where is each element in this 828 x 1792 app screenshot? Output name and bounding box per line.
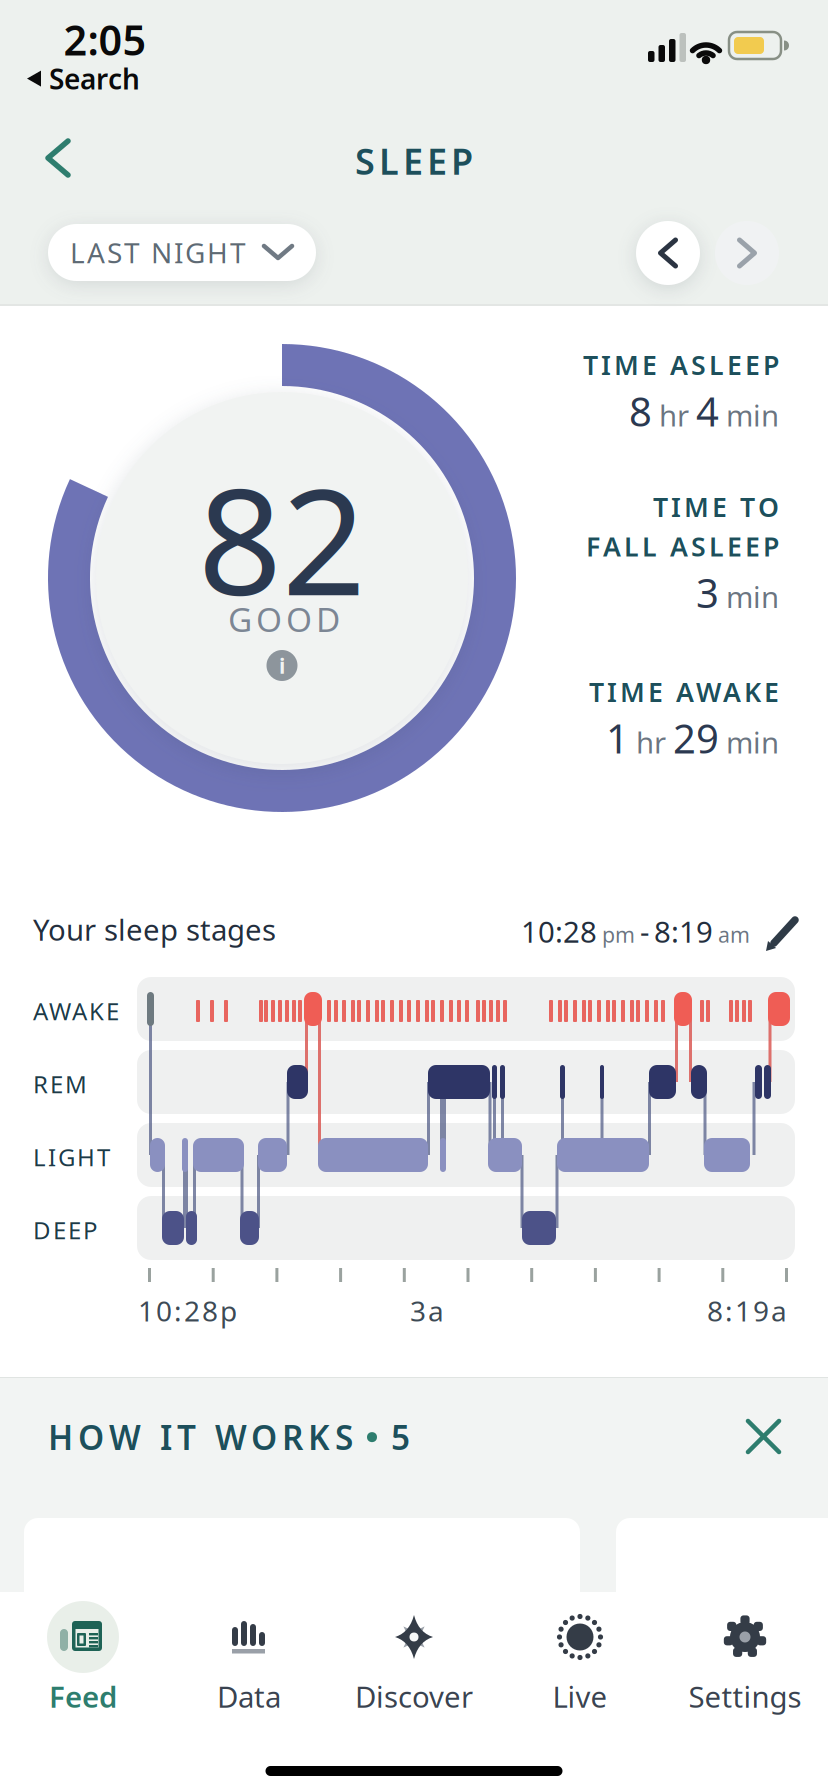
staticText: Feed — [49, 1677, 117, 1716]
staticText: LIGHT — [33, 1141, 110, 1173]
button[interactable] — [24, 1518, 580, 1618]
staticText: Search — [49, 60, 140, 97]
staticText: 3 — [696, 566, 719, 619]
staticText: LAST NIGHT — [70, 234, 246, 271]
staticText: am — [718, 920, 750, 949]
button[interactable]: i — [266, 650, 297, 681]
button[interactable] — [331, 1614, 497, 1660]
staticText: Discover — [355, 1677, 473, 1716]
button[interactable] — [0, 0, 828, 1792]
staticText: 29 — [673, 711, 719, 764]
staticText: FALL ASLEEP — [586, 528, 779, 564]
staticText: - — [640, 912, 649, 951]
staticText: 10:28 — [521, 912, 597, 951]
button[interactable] — [636, 221, 700, 285]
staticText: pm — [602, 920, 635, 949]
staticText: min — [726, 577, 779, 616]
button[interactable] — [32, 125, 84, 191]
staticText: HOW IT WORKS — [48, 1415, 353, 1459]
button[interactable] — [662, 1614, 828, 1660]
staticText: 4 — [696, 384, 719, 437]
staticText: Your sleep stages — [33, 910, 276, 949]
staticText: TIME ASLEEP — [583, 347, 779, 382]
button[interactable]: LAST NIGHT — [48, 224, 316, 281]
staticText: hr — [659, 396, 689, 435]
staticText: Live — [552, 1677, 607, 1716]
staticText: TIME AWAKE — [589, 674, 779, 709]
staticText: SLEEP — [355, 137, 473, 185]
staticText: min — [726, 396, 779, 435]
button[interactable] — [497, 1614, 663, 1660]
button[interactable] — [715, 221, 779, 285]
staticText: 2:05 — [63, 12, 146, 67]
staticText: hr — [636, 723, 666, 762]
staticText: 8:19 — [654, 912, 713, 951]
button[interactable] — [166, 1614, 332, 1660]
staticText: min — [726, 723, 779, 762]
staticText: Settings — [688, 1677, 801, 1716]
staticText: TIME TO — [653, 489, 779, 524]
button[interactable] — [616, 1518, 828, 1618]
staticText: AWAKE — [33, 995, 119, 1027]
staticText: DEEP — [33, 1214, 98, 1246]
staticText: i — [279, 651, 285, 680]
staticText: 8:19a — [707, 1292, 787, 1329]
staticText: 1 — [606, 711, 629, 764]
staticText: 8 — [629, 384, 652, 437]
staticText: 10:28p — [138, 1292, 237, 1329]
staticText: 82 — [198, 441, 366, 636]
button[interactable] — [0, 1601, 166, 1673]
staticText: 3a — [410, 1292, 444, 1329]
staticText: Data — [217, 1677, 281, 1716]
staticText: REM — [33, 1068, 87, 1100]
button[interactable]: 10:28 — [510, 912, 750, 951]
staticText: GOOD — [228, 597, 340, 641]
staticText: 5 — [391, 1415, 410, 1459]
